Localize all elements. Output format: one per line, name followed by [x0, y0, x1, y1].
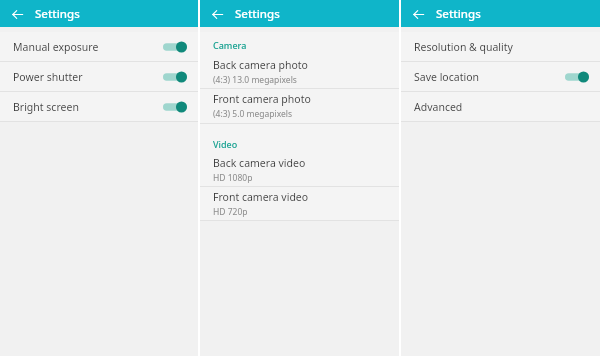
staticText: Settings [235, 6, 280, 22]
button[interactable]: Save location [401, 62, 600, 91]
staticText: Front camera video [213, 190, 309, 204]
button[interactable]: Power shutter [0, 62, 198, 91]
staticText: Camera [213, 39, 247, 51]
staticText: Front camera photo [213, 92, 311, 106]
button[interactable]: Back camera video [200, 154, 399, 186]
staticText: Video [213, 138, 238, 150]
staticText: Resolution & quality [414, 40, 589, 54]
staticText: Power shutter [13, 70, 163, 84]
staticText: HD 720p [213, 206, 248, 218]
button[interactable]: Advanced [401, 92, 600, 121]
staticText: Back camera video [213, 156, 306, 170]
staticText: Settings [35, 6, 80, 22]
staticText: Bright screen [13, 100, 163, 114]
button[interactable]: Back [207, 4, 227, 24]
button[interactable]: Front camera photo [200, 89, 399, 123]
staticText: Save location [414, 70, 565, 84]
button[interactable]: Back camera photo [200, 55, 399, 88]
staticText: Advanced [414, 100, 589, 114]
staticText: (4:3) 13.0 megapixels [213, 74, 297, 86]
staticText: (4:3) 5.0 megapixels [213, 108, 293, 120]
button[interactable]: Manual exposure [0, 32, 198, 61]
staticText: Back camera photo [213, 58, 308, 72]
staticText: Settings [436, 6, 481, 22]
button[interactable]: Back [7, 4, 27, 24]
staticText: Manual exposure [13, 40, 163, 54]
button[interactable]: Back [408, 4, 428, 24]
button[interactable]: Front camera video [200, 187, 399, 220]
button[interactable]: Resolution & quality [401, 32, 600, 61]
button[interactable]: Bright screen [0, 92, 198, 121]
staticText: HD 1080p [213, 172, 253, 184]
